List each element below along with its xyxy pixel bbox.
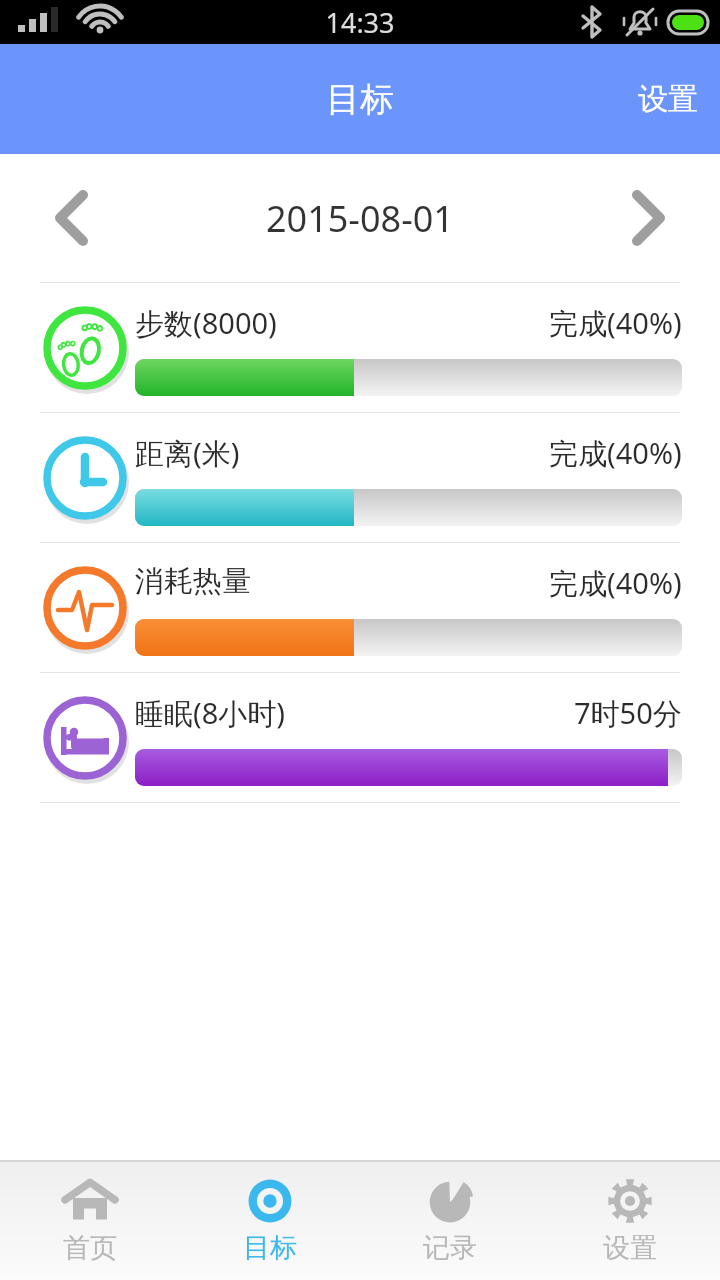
staticText: 消耗热量 — [135, 563, 251, 600]
button[interactable]: Previous day — [28, 175, 114, 261]
button[interactable]: Next day — [606, 175, 692, 261]
staticText: 睡眠(8小时) — [135, 693, 285, 733]
staticText: 14:33 — [325, 4, 395, 41]
staticText: 2015-08-01 — [266, 194, 454, 243]
button[interactable]: 首页 — [0, 1162, 180, 1280]
staticText: 步数(8000) — [135, 303, 277, 343]
button[interactable]: 设置 — [616, 60, 720, 138]
button[interactable]: 设置 — [540, 1162, 720, 1280]
staticText: 7时50分 — [574, 693, 682, 733]
button[interactable]: 记录 — [360, 1162, 540, 1280]
button[interactable]: 睡眠(8小时) — [0, 673, 720, 802]
button[interactable]: 步数(8000) — [0, 283, 720, 412]
button[interactable]: 消耗热量 — [0, 543, 720, 672]
staticText: 距离(米) — [135, 433, 240, 473]
staticText: 记录 — [423, 1231, 477, 1265]
staticText: 目标 — [326, 78, 394, 121]
staticText: 完成(40%) — [549, 303, 682, 343]
staticText: 设置 — [638, 80, 698, 118]
button[interactable]: 目标 — [180, 1162, 360, 1280]
staticText: 完成(40%) — [549, 433, 682, 473]
staticText: 完成(40%) — [549, 563, 682, 603]
staticText: 设置 — [603, 1231, 657, 1265]
staticText: 目标 — [243, 1231, 297, 1265]
staticText: 首页 — [63, 1231, 117, 1265]
button[interactable]: 距离(米) — [0, 413, 720, 542]
